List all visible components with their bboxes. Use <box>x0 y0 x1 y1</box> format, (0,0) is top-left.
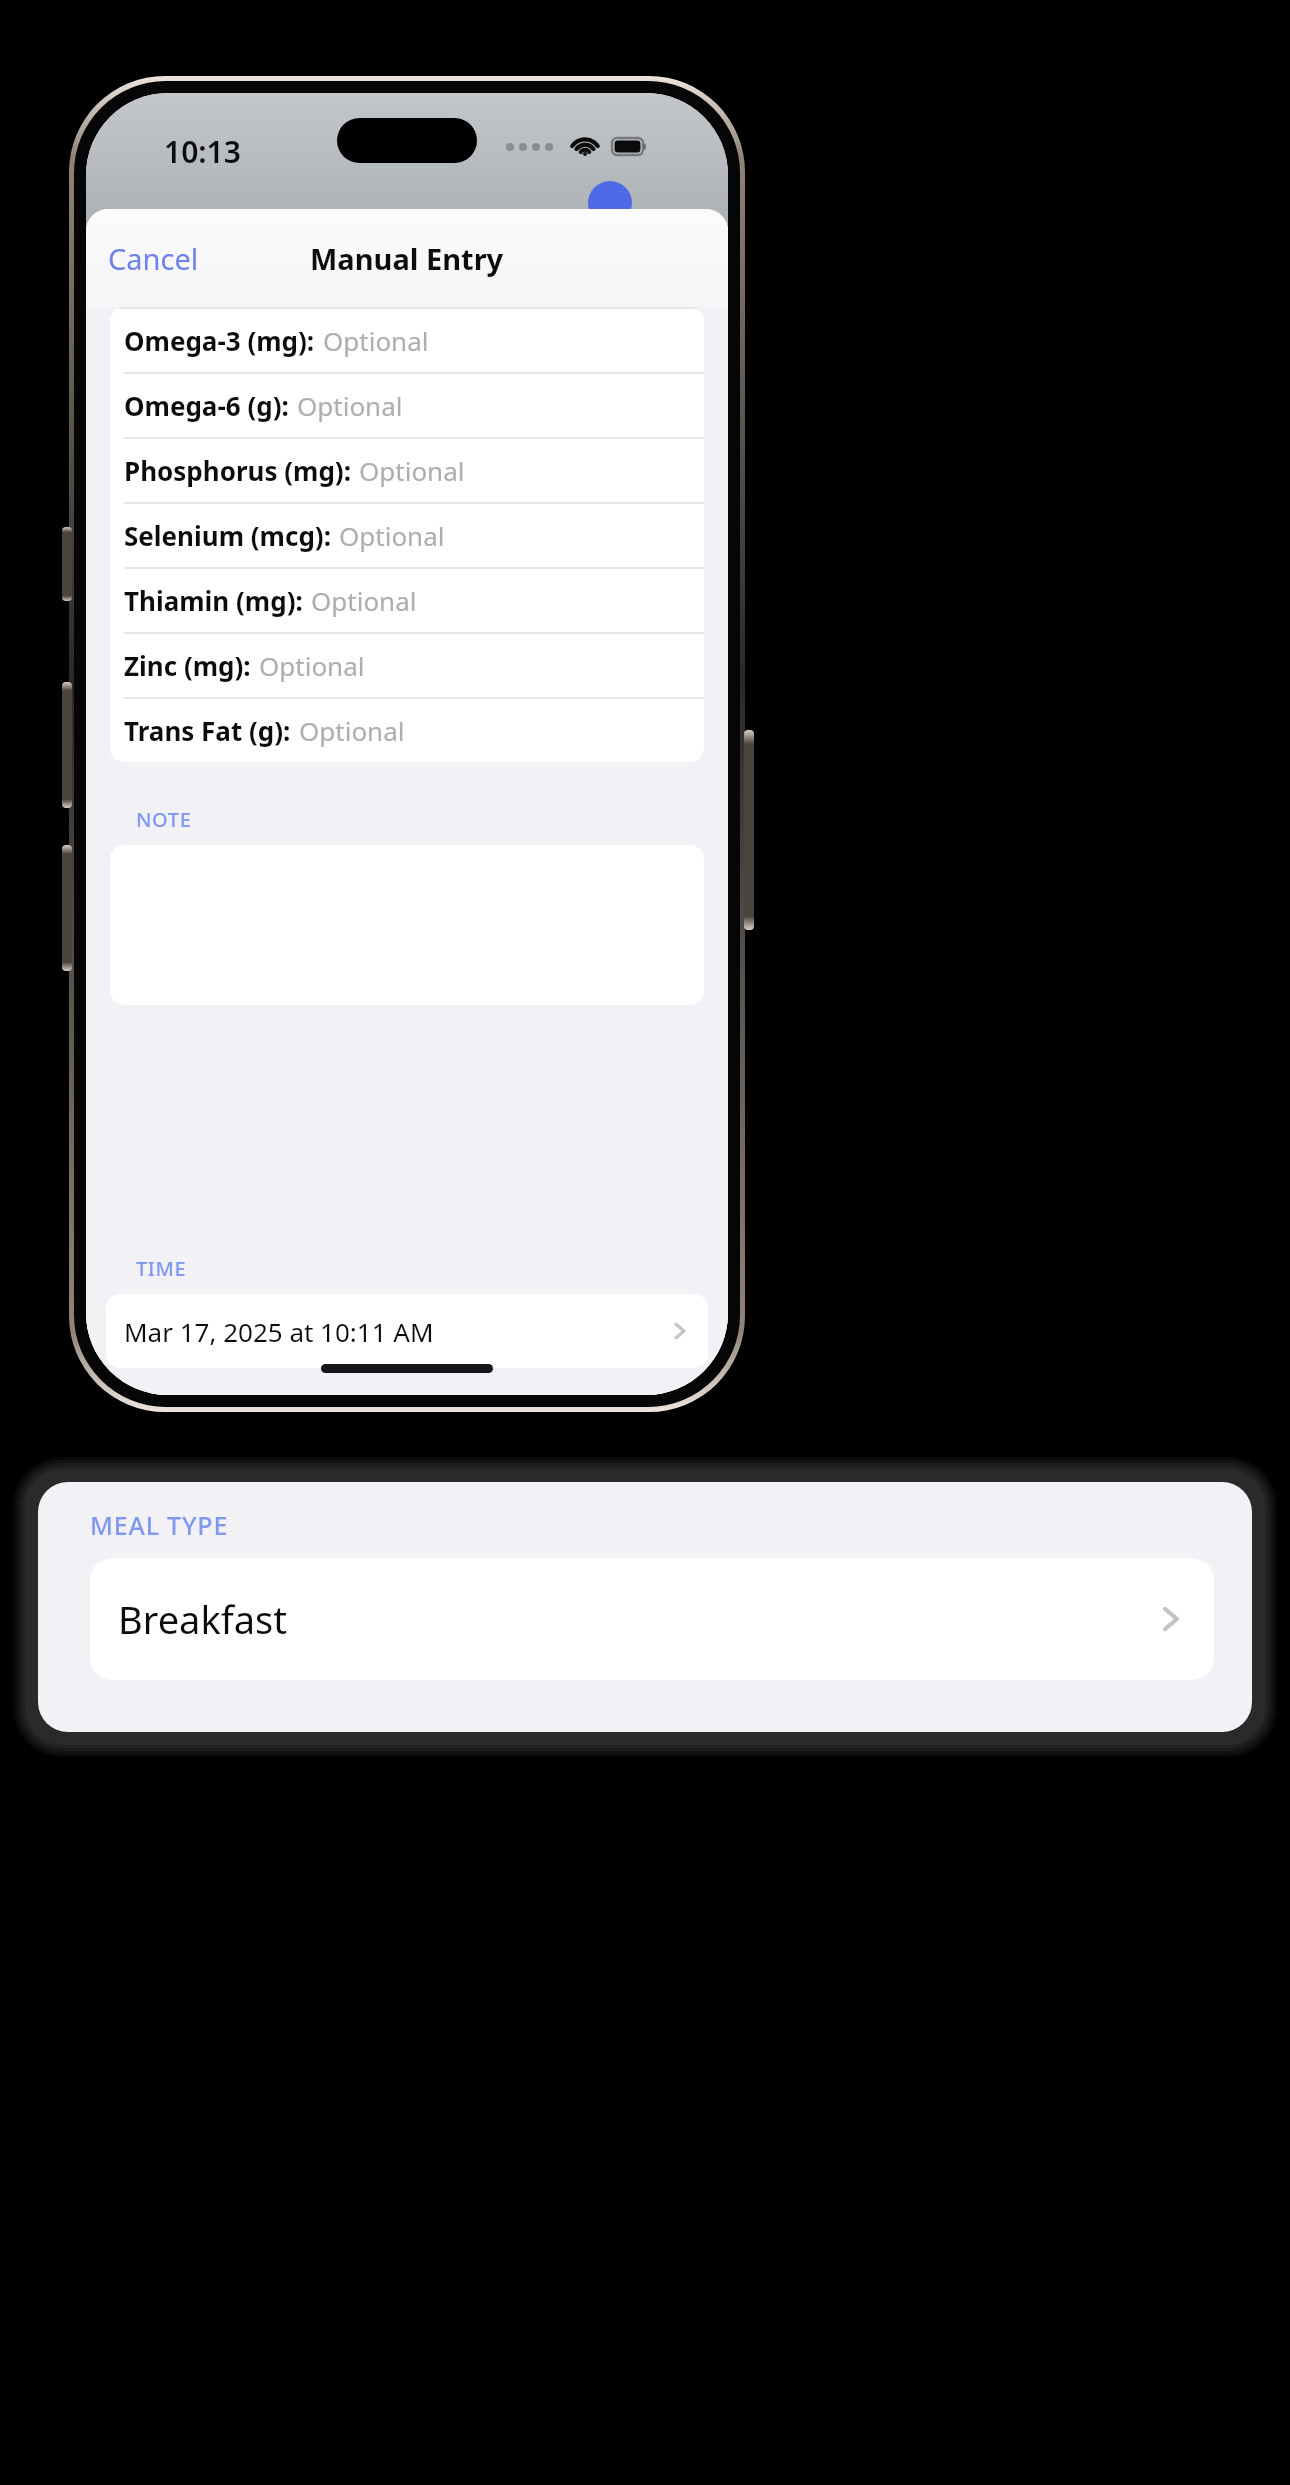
button[interactable]: Zinc (mg): <box>110 634 704 699</box>
staticText: Omega-6 (g): <box>124 388 289 423</box>
button[interactable]: Omega-3 (mg): <box>110 309 704 374</box>
button[interactable]: Selenium (mcg): <box>110 504 704 569</box>
button[interactable]: Thiamin (mg): <box>110 569 704 634</box>
staticText: Optional <box>297 388 403 423</box>
staticText: Optional <box>311 583 417 618</box>
button[interactable]: Mar 17, 2025 at 10:11 AM <box>106 1294 708 1368</box>
staticText: Trans Fat (g): <box>124 713 291 748</box>
staticText: TIME <box>136 1255 187 1282</box>
staticText: Optional <box>323 323 429 358</box>
button[interactable]: Phosphorus (mg): <box>110 439 704 504</box>
staticText: Selenium (mcg): <box>124 518 331 553</box>
staticText: Manual Entry <box>310 239 504 278</box>
staticText: Omega-3 (mg): <box>124 323 315 358</box>
staticText: Mar 17, 2025 at 10:11 AM <box>124 1314 434 1349</box>
button[interactable]: Cancel <box>86 229 221 288</box>
staticText: MEAL TYPE <box>90 1508 229 1542</box>
staticText: NOTE <box>136 806 192 833</box>
staticText: Thiamin (mg): <box>124 583 303 618</box>
button[interactable]: Trans Fat (g): <box>110 699 704 762</box>
staticText: Optional <box>339 518 445 553</box>
staticText: 10:13 <box>164 131 241 172</box>
staticText: Cancel <box>108 239 199 278</box>
other: Choose meal type <box>1156 1604 1186 1634</box>
staticText: Phosphorus (mg): <box>124 453 351 488</box>
staticText: Zinc (mg): <box>124 648 251 683</box>
staticText: Optional <box>259 648 365 683</box>
button[interactable]: Breakfast <box>90 1558 1214 1680</box>
staticText: Breakfast <box>118 1593 287 1645</box>
staticText: Optional <box>299 713 405 748</box>
button[interactable]: Omega-6 (g): <box>110 374 704 439</box>
staticText: Optional <box>359 453 465 488</box>
